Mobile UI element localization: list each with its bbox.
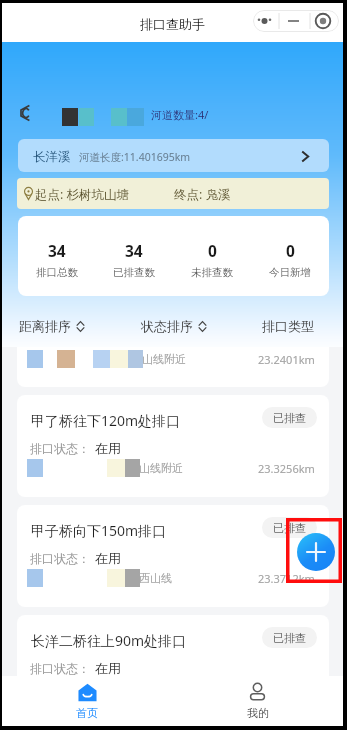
staticText: 在用 [95,550,121,566]
button[interactable]: 甲子桥向下150m排口 [17,505,329,607]
button[interactable]: 首页 [2,676,172,726]
staticText: 已排查数 [113,266,155,279]
staticText: 0 [286,240,295,261]
staticText: 已排查 [273,631,306,645]
staticText: 23.3712km [258,571,315,586]
staticText: 今日新增 [269,266,311,279]
staticText: 首页 [76,706,98,720]
staticText: 0 [208,240,217,261]
staticText: 排口状态： [30,551,90,566]
button[interactable]: More options [253,10,310,32]
button[interactable]: 排口类型 [258,314,318,338]
staticText: 未排查数 [191,266,233,279]
button[interactable]: 甲了桥往下120m处排口 [17,395,329,497]
button[interactable]: 长洋溪 [18,139,329,172]
staticText: 我的 [247,706,269,720]
staticText: 在用 [95,660,121,676]
staticText: 排口总数 [36,266,78,279]
staticText: 山线附近 [142,352,186,366]
button[interactable]: 状态排序 [137,314,211,338]
button[interactable]: 山线附近 [17,347,329,387]
staticText: 河道长度:11.401695km [79,150,191,164]
staticText: 距离排序 [19,318,71,334]
staticText: 甲了桥往下120m处排口 [31,411,181,430]
staticText: 西山线 [139,571,172,585]
button[interactable]: 长洋二桥往上90m处排口 [17,615,329,676]
staticText: 已排查 [273,411,306,425]
staticText: 34 [125,240,143,261]
staticText: 排口类型 [262,318,314,334]
staticText: 河道数量:4/ [151,107,209,122]
button[interactable]: Close [310,10,339,32]
button[interactable]: Add [297,533,335,571]
staticText: 排口状态： [30,661,90,676]
staticText: 在用 [95,440,121,456]
staticText: 山线附近 [139,461,183,475]
staticText: 起点: 杉树坑山塘 [35,186,130,203]
staticText: 甲子桥向下150m排口 [31,521,167,540]
button[interactable]: 0 [173,216,251,296]
button[interactable]: 34 [18,216,95,296]
staticText: 长洋二桥往上90m处排口 [31,631,187,650]
button[interactable]: 0 [251,216,329,296]
button[interactable]: 我的 [172,676,343,726]
staticText: 已排查 [273,521,306,535]
staticText: 23.2401km [258,352,315,367]
staticText: 终点: 凫溪 [174,186,231,203]
staticText: 排口状态： [30,441,90,456]
button[interactable]: 34 [95,216,173,296]
button[interactable]: 距离排序 [15,314,89,338]
staticText: 长洋溪 [33,149,71,165]
staticText: 排口查助手 [140,16,205,32]
staticText: 状态排序 [141,318,193,334]
staticText: 23.3256km [258,461,315,476]
staticText: 34 [48,240,66,261]
